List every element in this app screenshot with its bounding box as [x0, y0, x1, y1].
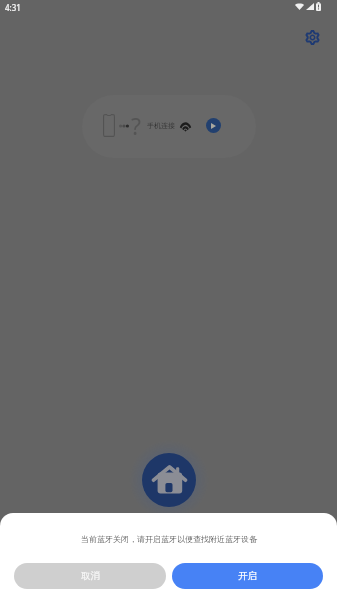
button[interactable]: 取消 [14, 563, 166, 589]
button[interactable]: Play [206, 118, 221, 133]
staticText: 当前蓝牙关闭，请开启蓝牙以便查找附近蓝牙设备 [81, 534, 257, 544]
button[interactable]: ? [82, 95, 256, 158]
button[interactable]: Settings [300, 25, 324, 49]
staticText: ? [131, 110, 141, 141]
staticText: 开启 [238, 570, 257, 582]
button[interactable]: Home [142, 453, 196, 507]
button[interactable]: 开启 [172, 563, 323, 589]
staticText: 取消 [81, 570, 100, 582]
staticText: 手机连接 [147, 121, 175, 130]
staticText: 4:31 [5, 2, 21, 13]
